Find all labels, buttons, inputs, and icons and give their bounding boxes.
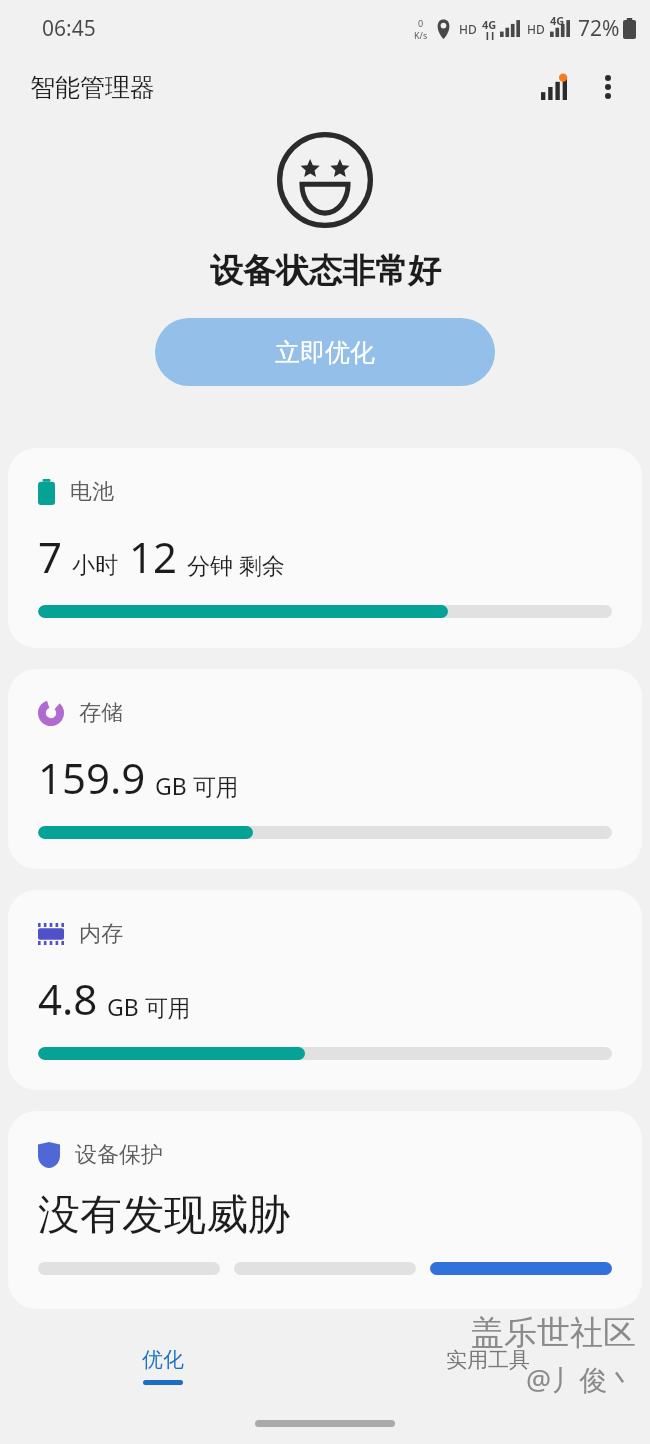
staticText: 设备保护 — [75, 1141, 163, 1169]
staticText: 存储 — [79, 699, 123, 727]
staticText: 小时 — [72, 551, 118, 580]
staticText: 实用工具 — [446, 1347, 530, 1373]
staticText: HD — [459, 21, 477, 37]
staticText: 分钟 剩余 — [187, 549, 285, 580]
staticText: 0 — [418, 17, 424, 29]
staticText: 设备状态非常好 — [210, 250, 441, 292]
button[interactable]: 存储 — [8, 669, 642, 869]
staticText: GB 可用 — [107, 991, 191, 1022]
staticText: 智能管理器 — [30, 72, 155, 103]
staticText: 4G — [550, 13, 565, 28]
staticText: 159.9 — [38, 749, 146, 806]
staticText: 7 — [38, 528, 63, 585]
button[interactable]: 实用工具 — [325, 1330, 650, 1402]
staticText: 优化 — [142, 1347, 184, 1373]
button[interactable]: 设备保护 — [8, 1111, 642, 1309]
button[interactable]: 立即优化 — [155, 318, 495, 386]
button[interactable]: Usage statistics — [530, 63, 578, 111]
staticText: 4G — [482, 17, 497, 32]
staticText: K/s — [414, 29, 428, 41]
button[interactable]: More options — [584, 63, 632, 111]
staticText: 内存 — [79, 920, 123, 948]
staticText: 立即优化 — [275, 337, 375, 368]
staticText: GB 可用 — [155, 770, 239, 801]
staticText: HD — [527, 21, 545, 37]
staticText: 12 — [129, 528, 178, 585]
staticText: 没有发现威胁 — [38, 1189, 290, 1242]
staticText: 06:45 — [42, 14, 96, 43]
button[interactable]: 电池 — [8, 448, 642, 648]
staticText: 盖乐世社区 — [471, 1312, 636, 1354]
staticText: @丿俊丶 — [526, 1360, 636, 1398]
staticText: 4.8 — [38, 970, 98, 1027]
staticText: 电池 — [70, 478, 114, 506]
staticText: 72% — [578, 14, 620, 43]
button[interactable]: 内存 — [8, 890, 642, 1090]
button[interactable]: 优化 — [0, 1330, 325, 1402]
